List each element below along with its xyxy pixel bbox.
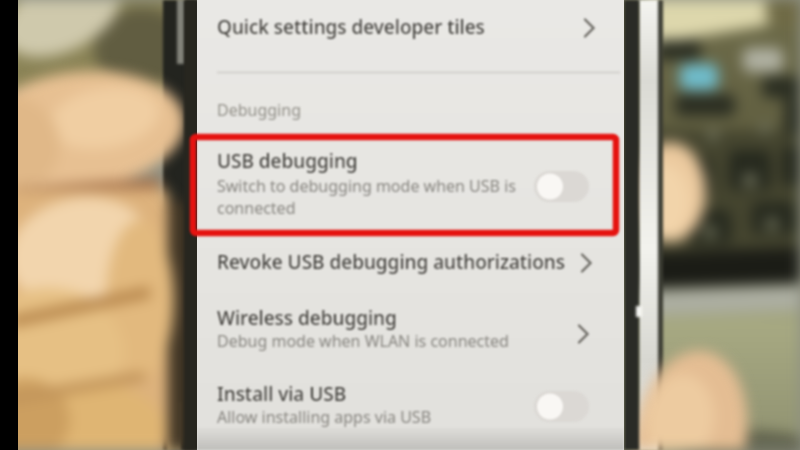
- staticText: Allow installing apps via USB: [217, 406, 432, 428]
- staticText: Quick settings developer tiles: [217, 14, 485, 40]
- button[interactable]: [534, 391, 589, 422]
- staticText: Revoke USB debugging authorizations: [217, 249, 566, 275]
- button[interactable]: Revoke USB debugging authorizations: [197, 237, 624, 289]
- button[interactable]: Wireless debugging: [197, 295, 624, 363]
- button[interactable]: Install via USB: [197, 370, 624, 450]
- staticText: connected: [217, 197, 296, 219]
- button[interactable]: Quick settings developer tiles: [197, 0, 624, 60]
- staticText: Debugging: [217, 99, 301, 121]
- button[interactable]: [534, 171, 589, 202]
- staticText: Wireless debugging: [217, 305, 397, 331]
- staticText: Switch to debugging mode when USB is: [217, 175, 516, 197]
- staticText: Debug mode when WLAN is connected: [217, 330, 509, 352]
- button[interactable]: USB debugging: [197, 140, 624, 232]
- staticText: Install via USB: [217, 381, 347, 407]
- staticText: USB debugging: [217, 148, 358, 174]
